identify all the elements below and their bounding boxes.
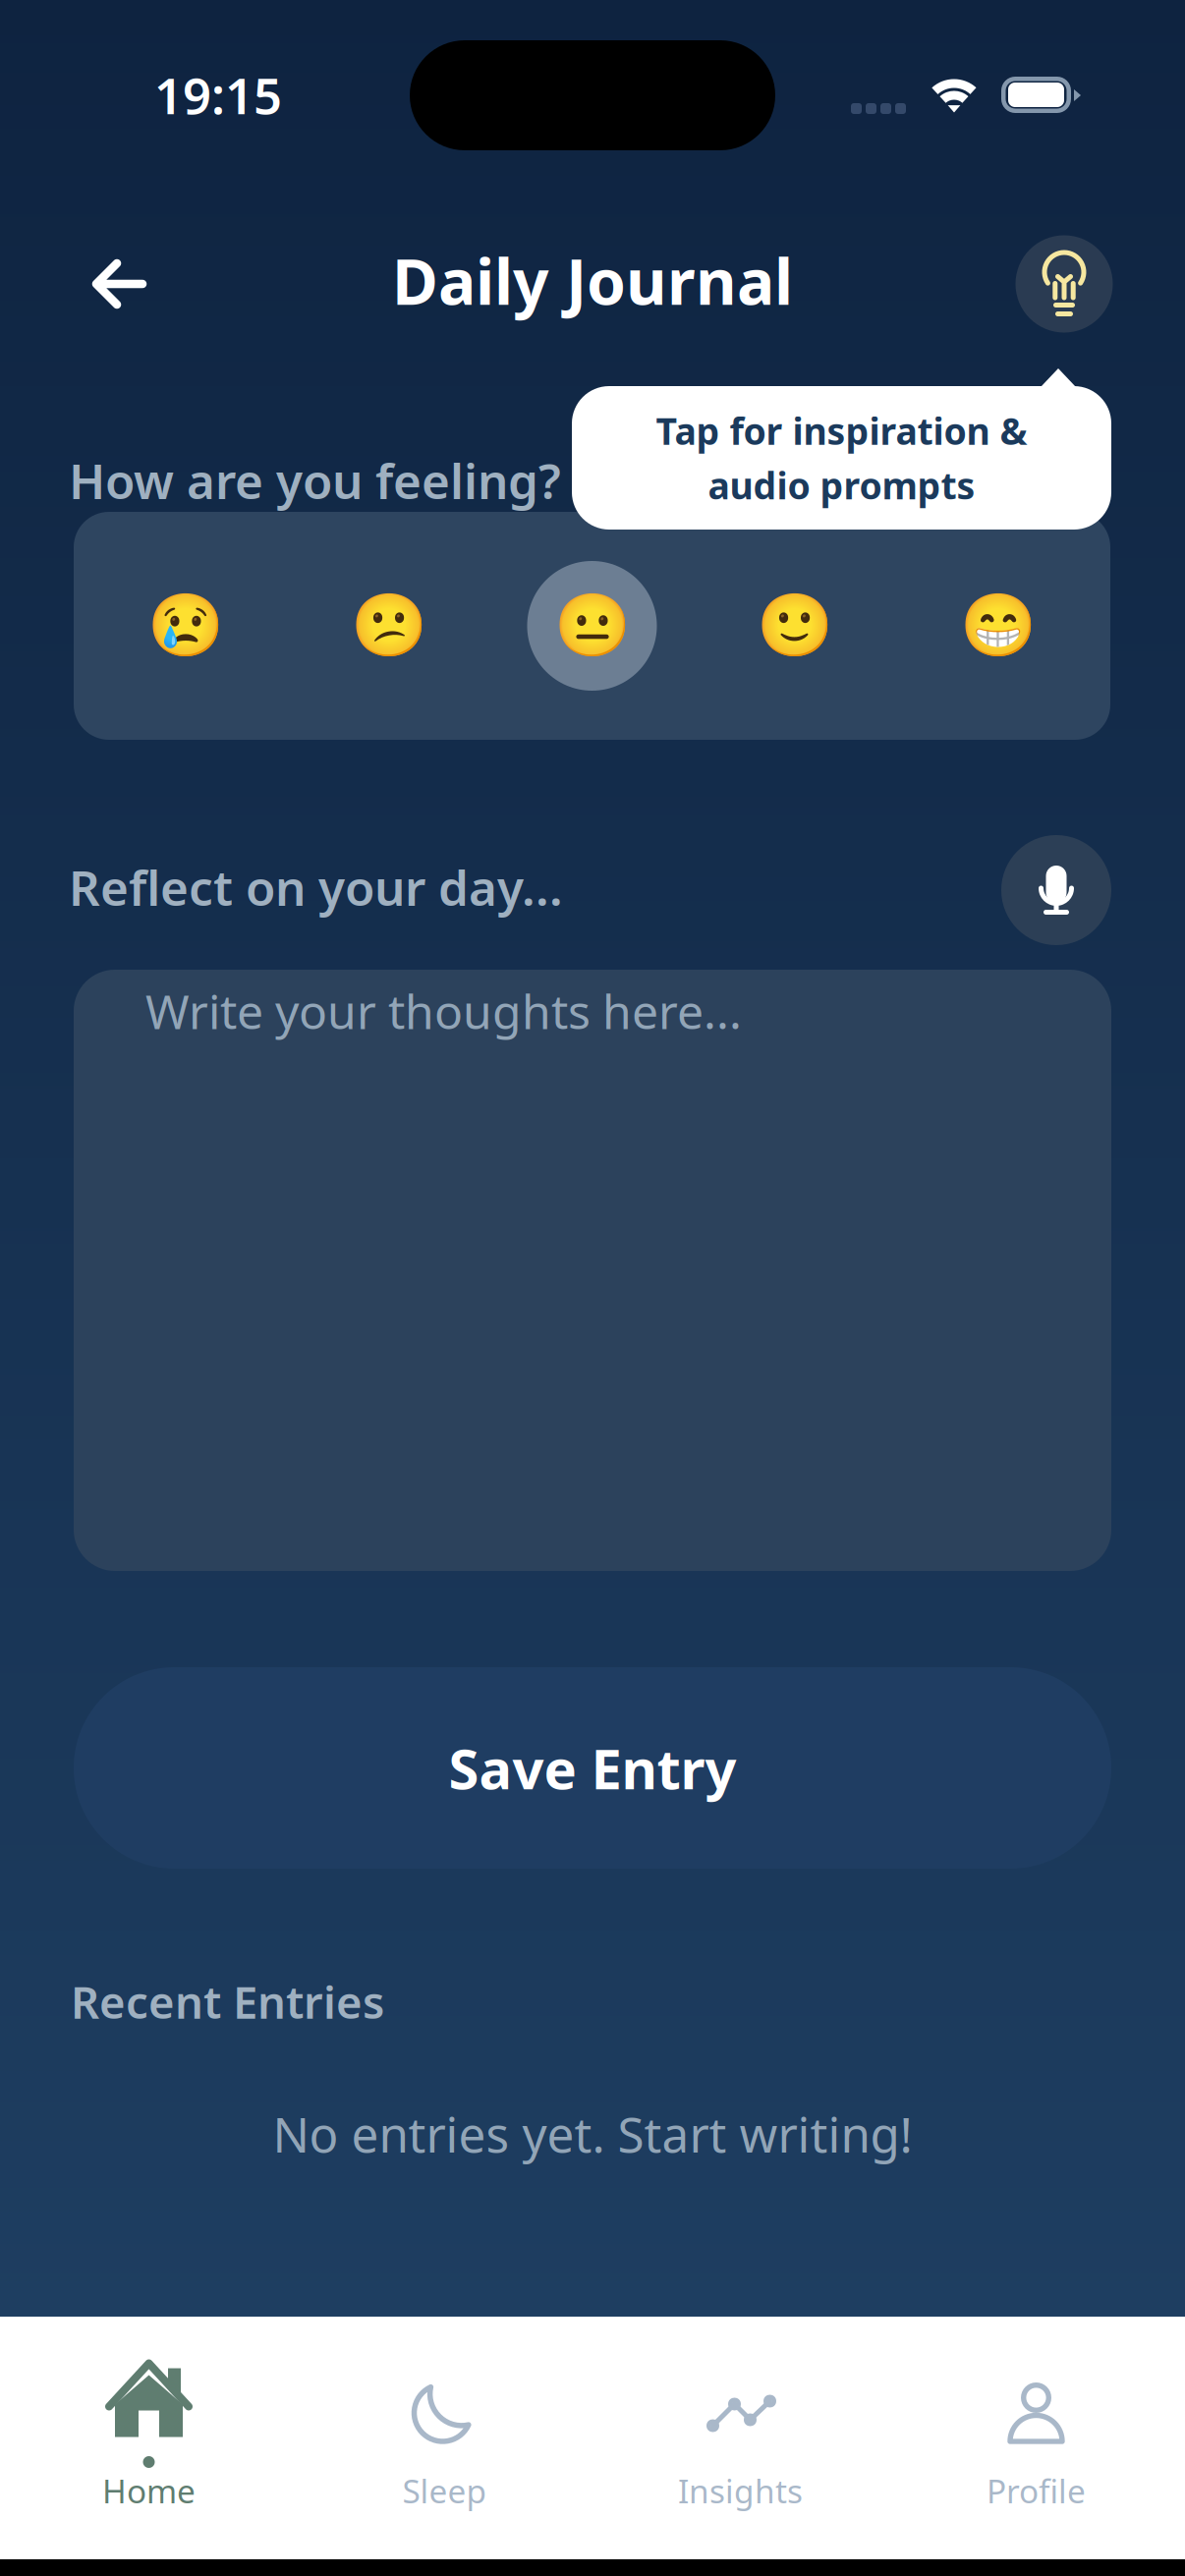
staticText: 19:15 bbox=[154, 62, 282, 128]
button[interactable]: Happy bbox=[694, 512, 897, 740]
button[interactable]: Very happy bbox=[897, 512, 1100, 740]
staticText: 😐 bbox=[554, 591, 630, 661]
staticText: Recent Entries bbox=[71, 1972, 384, 2031]
staticText: Tap for inspiration & bbox=[656, 406, 1027, 455]
staticText: No entries yet. Start writing! bbox=[273, 2101, 912, 2166]
staticText: Insights bbox=[678, 2469, 803, 2512]
button[interactable]: Back bbox=[60, 230, 178, 338]
staticText: 🙂 bbox=[757, 591, 833, 661]
staticText: Reflect on your day... bbox=[69, 855, 563, 919]
button[interactable]: Profile bbox=[888, 2317, 1184, 2559]
staticText: Daily Journal bbox=[392, 239, 793, 322]
button[interactable]: Very sad bbox=[85, 512, 288, 740]
staticText: How are you feeling? bbox=[69, 448, 561, 512]
staticText: Profile bbox=[987, 2469, 1086, 2512]
staticText: 😕 bbox=[351, 591, 427, 661]
button[interactable]: Record voice note bbox=[1001, 835, 1111, 945]
staticText: Save Entry bbox=[449, 1731, 736, 1804]
staticText: Sleep bbox=[402, 2469, 487, 2512]
button[interactable]: Insights bbox=[592, 2317, 888, 2559]
staticText: 😢 bbox=[148, 591, 224, 661]
button[interactable]: Neutral bbox=[491, 512, 694, 740]
staticText: audio prompts bbox=[708, 461, 975, 510]
button[interactable]: Save Entry bbox=[74, 1667, 1111, 1869]
button[interactable]: Inspiration and audio prompts bbox=[1010, 230, 1118, 338]
staticText: Home bbox=[102, 2469, 196, 2512]
button[interactable]: Sleep bbox=[297, 2317, 592, 2559]
staticText: 😁 bbox=[960, 591, 1036, 661]
staticText: Write your thoughts here... bbox=[145, 980, 742, 1042]
button[interactable]: Sad bbox=[288, 512, 491, 740]
button[interactable]: Home bbox=[1, 2317, 297, 2559]
